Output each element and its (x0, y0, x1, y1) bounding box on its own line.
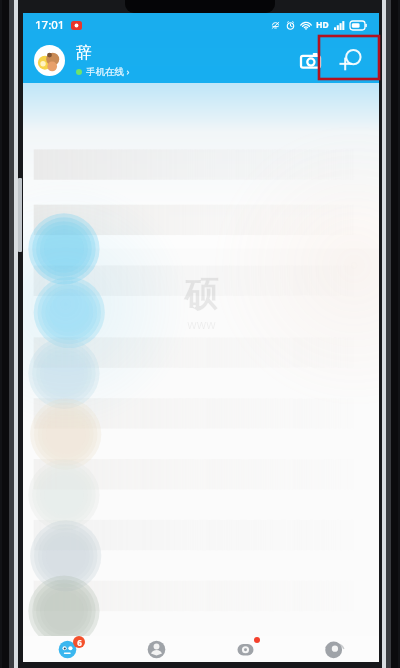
staticText: 6 (77, 637, 82, 648)
button[interactable]: Profile avatar (34, 45, 65, 76)
button[interactable]: Profile (290, 636, 379, 662)
staticText: 17:01 (35, 17, 65, 33)
button[interactable]: Add (327, 37, 373, 83)
button[interactable]: Contacts (112, 636, 201, 662)
staticText: HD (316, 19, 329, 31)
staticText: 硕 (184, 273, 218, 316)
staticText: 手机在线 › (86, 65, 130, 78)
staticText: 辞 (76, 43, 92, 63)
button[interactable]: Messages (23, 636, 112, 662)
button[interactable]: Camera (293, 43, 327, 77)
staticText: www (187, 316, 216, 332)
button[interactable]: 辞 (76, 43, 293, 78)
button[interactable]: Discover (201, 636, 290, 662)
